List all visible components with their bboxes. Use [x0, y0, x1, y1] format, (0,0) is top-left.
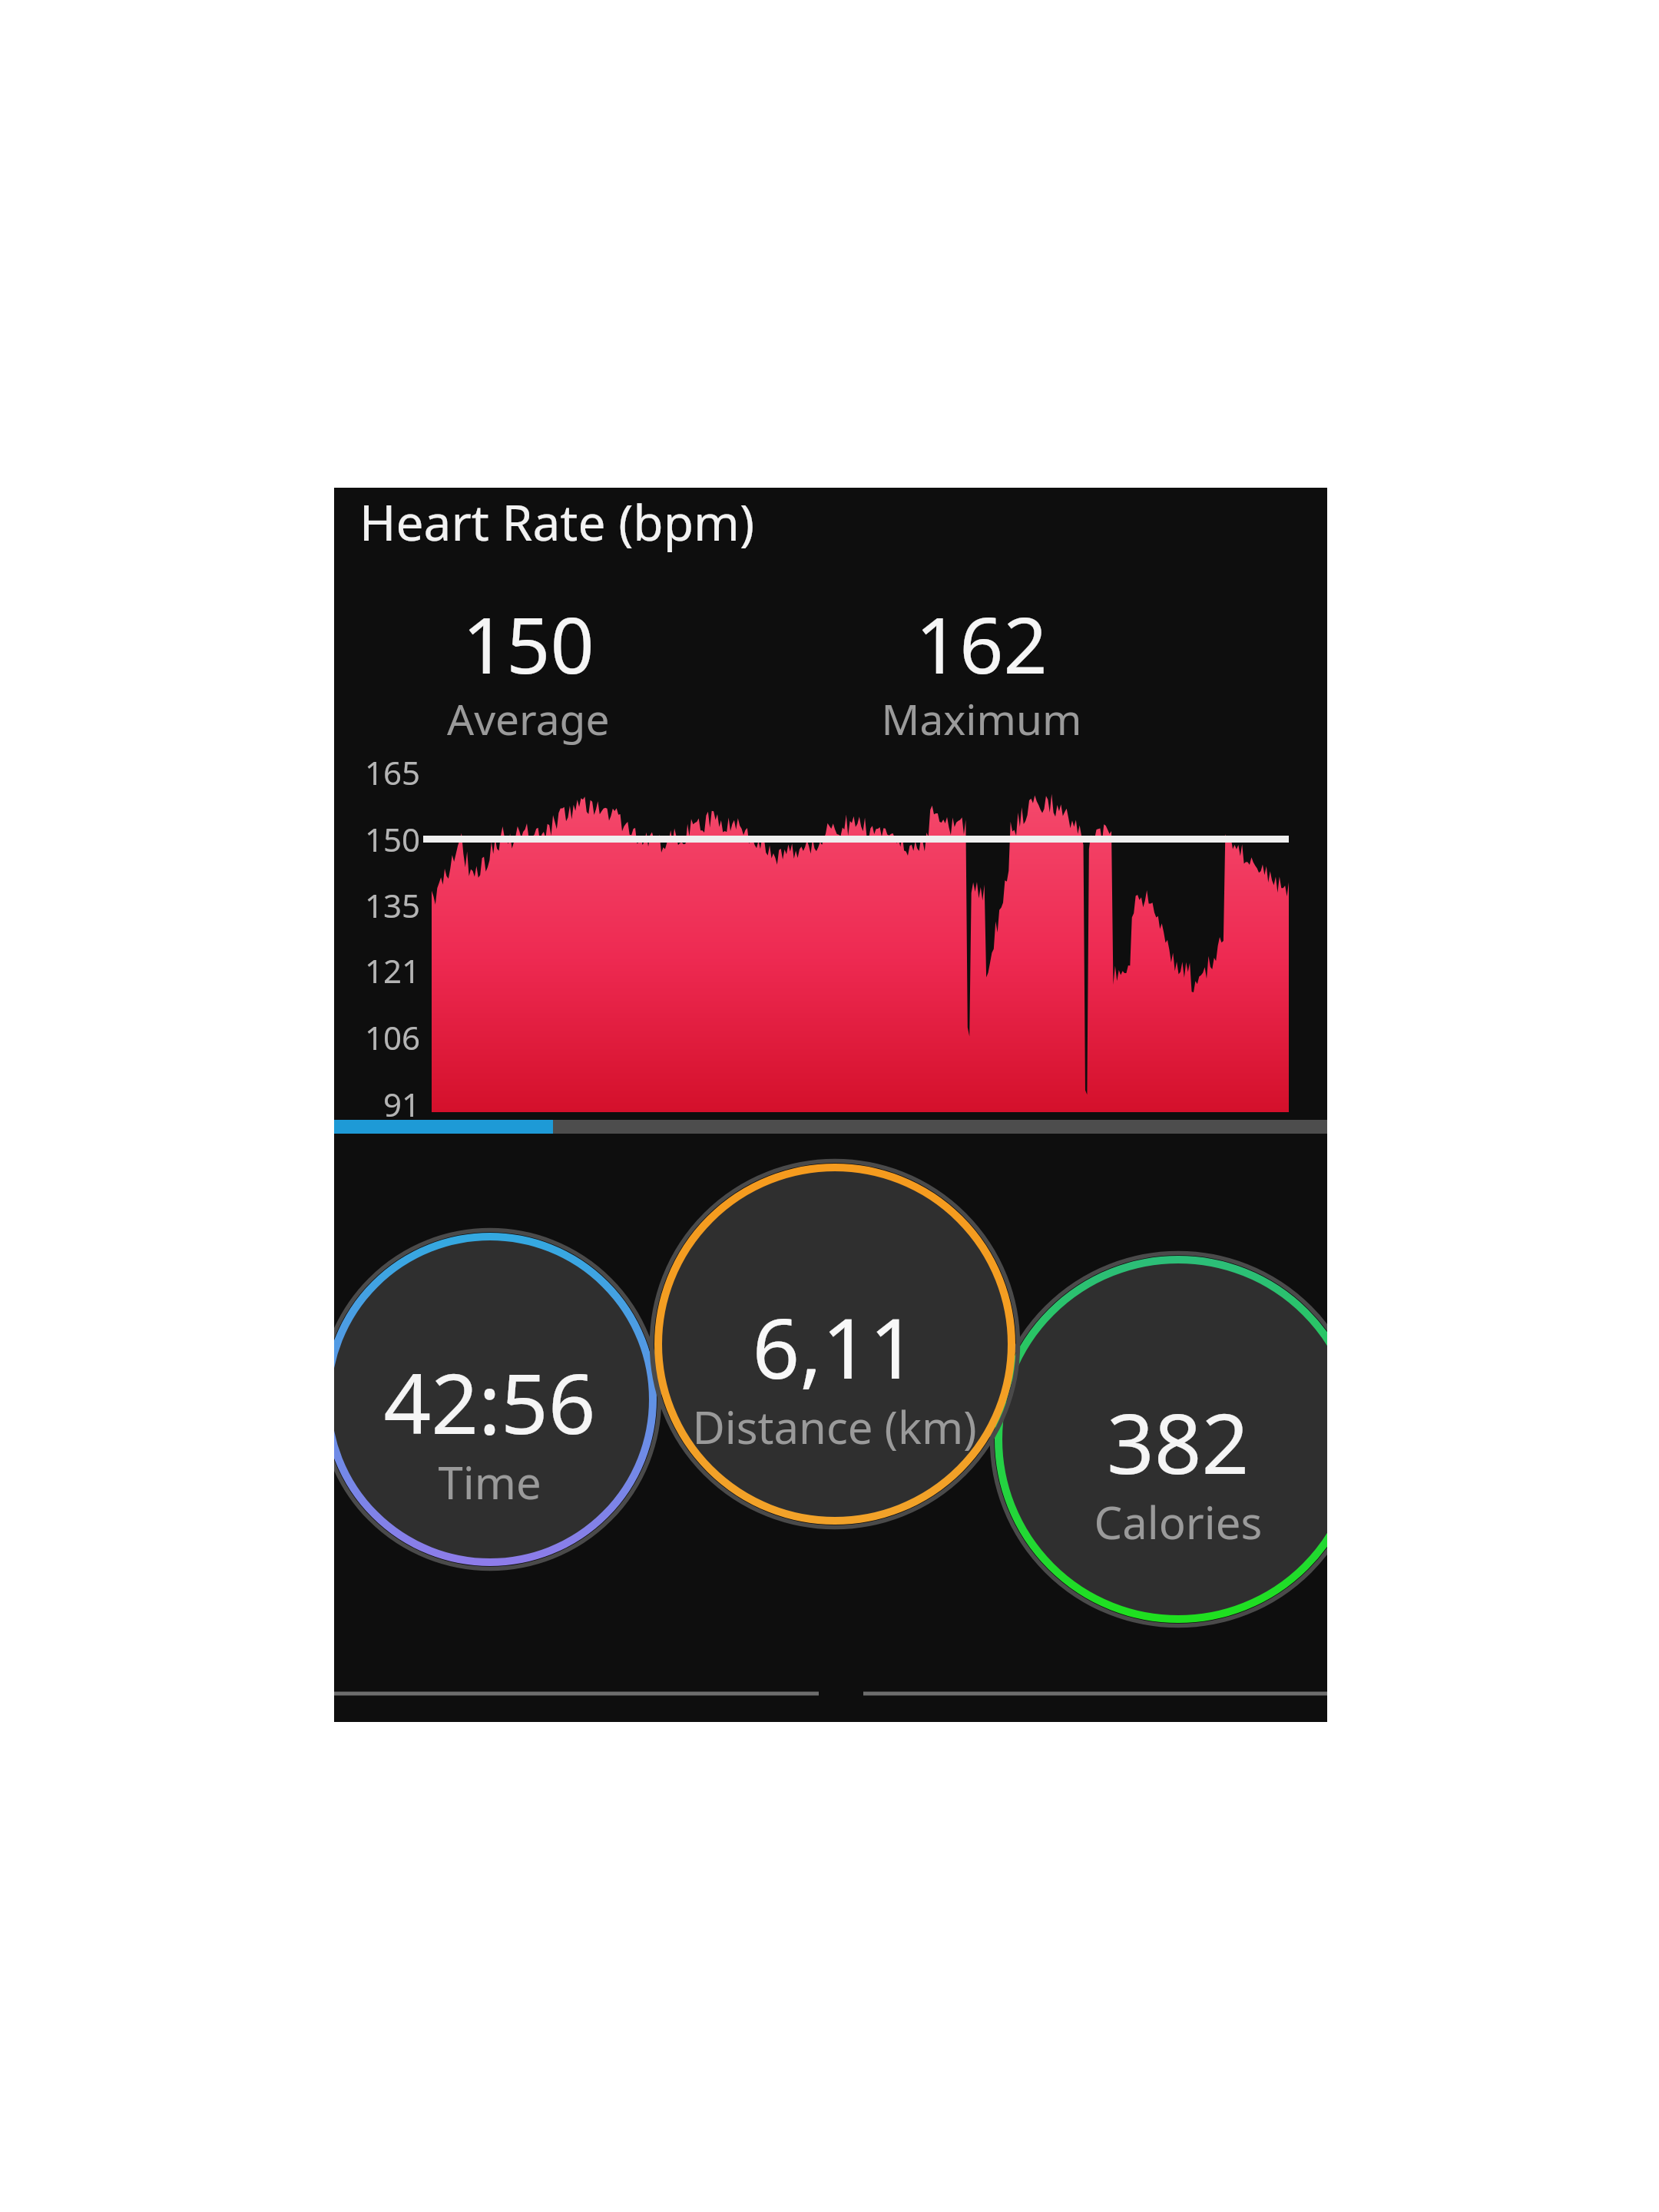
button[interactable]: Workout summary [0, 0, 1659, 2212]
